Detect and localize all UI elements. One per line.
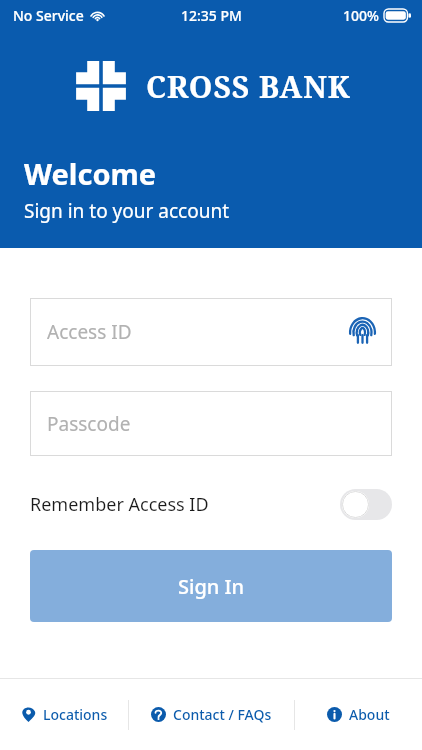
staticText: Welcome [24, 154, 157, 193]
staticText: Contact / FAQs [173, 705, 272, 724]
button[interactable]: Contact / FAQs [129, 679, 294, 750]
staticText: Sign In [178, 573, 245, 600]
button[interactable]: Sign in with fingerprint [345, 315, 379, 349]
button[interactable]: Locations [0, 679, 128, 750]
button[interactable]: Sign In [30, 550, 392, 622]
button[interactable]: Remember Access ID toggle [340, 489, 392, 520]
staticText: Passcode [47, 411, 131, 437]
staticText: Remember Access ID [30, 492, 209, 517]
staticText: 100% [343, 6, 379, 25]
staticText: 12:35 PM [181, 6, 242, 25]
staticText: Access ID [47, 319, 132, 345]
button[interactable]: About [295, 679, 422, 750]
button[interactable]: Passcode [30, 391, 392, 456]
staticText: CROSS BANK [146, 66, 351, 107]
staticText: Locations [43, 705, 108, 724]
staticText: About [349, 705, 390, 724]
staticText: Sign in to your account [24, 198, 230, 224]
button[interactable]: Access ID [30, 298, 392, 366]
staticText: No Service [13, 6, 84, 25]
button[interactable]: Remember Access ID [30, 480, 392, 528]
